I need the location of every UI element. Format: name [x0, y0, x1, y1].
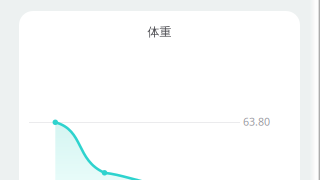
- staticText: 63.80: [243, 114, 270, 129]
- button[interactable]: 体重: [99, 19, 219, 45]
- staticText: 体重: [147, 25, 171, 39]
